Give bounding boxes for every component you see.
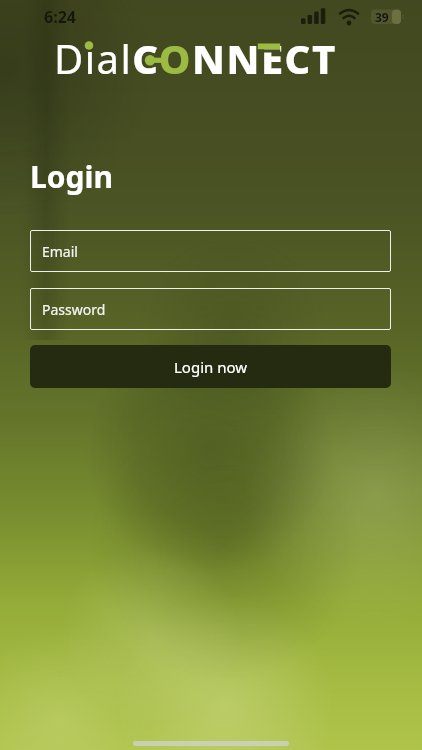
staticText: 39 [375, 9, 389, 25]
button[interactable]: Password [30, 288, 391, 330]
button[interactable]: Email [30, 230, 391, 272]
staticText: Login now [174, 357, 248, 377]
staticText: Login [30, 156, 113, 197]
staticText: Email [42, 242, 78, 261]
staticText: DialCONNECT [54, 31, 337, 85]
staticText: Password [42, 300, 106, 319]
staticText: 6:24 [44, 6, 76, 28]
button[interactable]: Login now [30, 345, 391, 388]
